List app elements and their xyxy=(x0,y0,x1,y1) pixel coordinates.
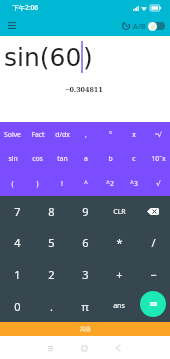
staticText: 3 xyxy=(82,267,89,282)
staticText: . xyxy=(50,299,53,314)
button[interactable]: ans xyxy=(102,290,136,322)
button[interactable]: sin xyxy=(0,146,25,171)
button[interactable]: 8 xyxy=(34,196,68,227)
staticText: b xyxy=(108,154,113,163)
button[interactable]: 3 xyxy=(68,258,102,290)
staticText: ) xyxy=(83,43,93,72)
button[interactable]: 0 xyxy=(0,290,34,322)
staticText: ! xyxy=(61,179,63,188)
button[interactable]: Back xyxy=(112,342,124,354)
button[interactable]: , xyxy=(74,122,98,146)
staticText: sin(60 xyxy=(4,43,82,72)
button[interactable]: Equals xyxy=(140,291,166,317)
button[interactable]: * xyxy=(102,227,136,258)
button[interactable]: Solve xyxy=(0,122,25,146)
button[interactable]: cos xyxy=(25,146,50,171)
staticText: ) xyxy=(36,179,39,188)
staticText: CLR xyxy=(113,207,126,217)
staticText: x xyxy=(132,130,136,139)
button[interactable]: ^ xyxy=(74,171,98,196)
staticText: 4 xyxy=(14,235,21,250)
staticText: ( xyxy=(11,179,14,188)
button[interactable]: − xyxy=(136,258,170,290)
staticText: 下午2:06 xyxy=(12,3,38,12)
staticText: 1 xyxy=(14,267,21,282)
button[interactable]: c xyxy=(122,146,146,171)
button[interactable]: 2 xyxy=(34,258,68,290)
button[interactable]: + xyxy=(102,258,136,290)
button[interactable]: Backspace xyxy=(136,196,170,227)
staticText: √ xyxy=(156,180,161,188)
staticText: ans xyxy=(113,301,125,311)
button[interactable]: ( xyxy=(0,171,25,196)
button[interactable]: 9 xyxy=(68,196,102,227)
button[interactable]: ° xyxy=(98,122,122,146)
button[interactable]: Home xyxy=(78,342,90,354)
staticText: 高级 xyxy=(80,326,91,333)
button[interactable]: 1 xyxy=(0,258,34,290)
button[interactable]: π xyxy=(68,290,102,322)
button[interactable]: 高级 xyxy=(0,322,170,336)
staticText: 2 xyxy=(48,267,55,282)
staticText: d/dx xyxy=(55,130,70,139)
button[interactable]: ˣ√ xyxy=(146,122,170,146)
staticText: −0.304811 xyxy=(65,84,103,95)
button[interactable] xyxy=(136,290,170,322)
button[interactable]: Recents xyxy=(44,342,56,354)
button[interactable]: ^3 xyxy=(122,171,146,196)
staticText: ^2 xyxy=(106,179,114,188)
staticText: ° xyxy=(109,130,112,139)
staticText: ˣ√ xyxy=(155,130,162,139)
staticText: Fact xyxy=(31,130,45,139)
staticText: 5 xyxy=(48,235,55,250)
button[interactable]: / xyxy=(136,227,170,258)
staticText: * xyxy=(116,235,123,250)
button[interactable]: Toggle A B mode xyxy=(148,19,165,33)
staticText: 10ˆx xyxy=(151,154,166,163)
staticText: 6 xyxy=(82,235,89,250)
button[interactable]: Fact xyxy=(25,122,50,146)
button[interactable]: CLR xyxy=(102,196,136,227)
staticText: ^ xyxy=(84,179,88,188)
button[interactable]: 7 xyxy=(0,196,34,227)
button[interactable]: 5 xyxy=(34,227,68,258)
staticText: a xyxy=(84,154,88,163)
staticText: Solve xyxy=(4,130,21,139)
staticText: sin xyxy=(8,154,18,163)
button[interactable]: x xyxy=(122,122,146,146)
staticText: c xyxy=(132,154,136,163)
staticText: − xyxy=(150,267,157,282)
button[interactable]: . xyxy=(34,290,68,322)
button[interactable]: History xyxy=(119,19,133,33)
button[interactable]: Menu xyxy=(3,17,20,34)
button[interactable]: ) xyxy=(25,171,50,196)
button[interactable]: √ xyxy=(146,171,170,196)
staticText: cos xyxy=(32,154,43,163)
staticText: A/B xyxy=(133,21,146,31)
staticText: 9 xyxy=(82,204,89,219)
staticText: , xyxy=(85,130,87,139)
button[interactable]: ! xyxy=(50,171,74,196)
button[interactable]: 10ˆx xyxy=(146,146,170,171)
staticText: 0 xyxy=(14,299,21,314)
staticText: 7 xyxy=(14,204,21,219)
staticText: tan xyxy=(57,154,68,163)
staticText: ^3 xyxy=(130,179,138,188)
button[interactable]: 6 xyxy=(68,227,102,258)
staticText: π xyxy=(81,299,89,314)
button[interactable]: b xyxy=(98,146,122,171)
button[interactable]: d/dx xyxy=(50,122,74,146)
button[interactable]: a xyxy=(74,146,98,171)
button[interactable]: ^2 xyxy=(98,171,122,196)
staticText: + xyxy=(116,267,123,282)
button[interactable]: 4 xyxy=(0,227,34,258)
staticText: / xyxy=(151,235,156,250)
staticText: 8 xyxy=(48,204,55,219)
button[interactable]: tan xyxy=(50,146,74,171)
